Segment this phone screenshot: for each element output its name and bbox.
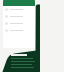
button[interactable] (3, 0, 35, 6)
button[interactable] (3, 27, 35, 34)
button[interactable] (3, 6, 35, 13)
button[interactable]: Service details (11, 54, 40, 72)
button[interactable] (3, 13, 35, 20)
button[interactable] (3, 20, 35, 27)
